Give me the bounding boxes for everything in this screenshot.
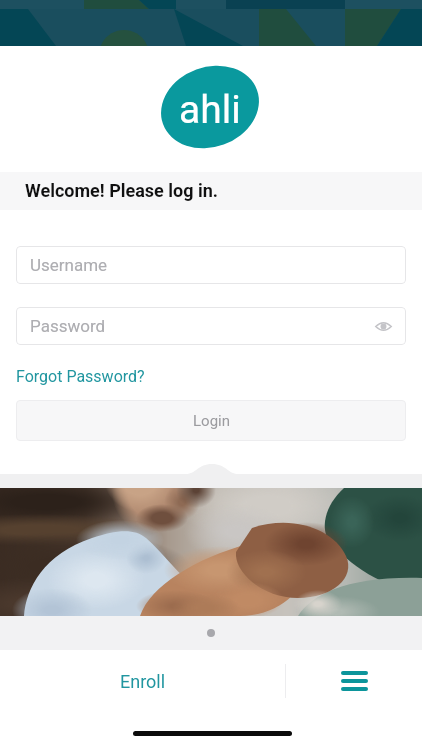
button[interactable]: Forgot Password? xyxy=(16,367,145,386)
staticText: Username xyxy=(30,255,108,275)
button[interactable]: Password xyxy=(16,307,406,345)
button[interactable]: Login xyxy=(16,400,406,441)
button[interactable]: Show password xyxy=(371,314,395,338)
button[interactable]: Username xyxy=(16,246,406,284)
staticText: Welcome! Please log in. xyxy=(25,180,219,201)
staticText: Enroll xyxy=(120,671,166,692)
button[interactable]: Enroll xyxy=(0,650,285,712)
staticText: ahli xyxy=(179,87,241,133)
staticText: Login xyxy=(193,412,230,430)
button[interactable]: Menu xyxy=(286,650,422,712)
staticText: Password xyxy=(30,316,106,336)
